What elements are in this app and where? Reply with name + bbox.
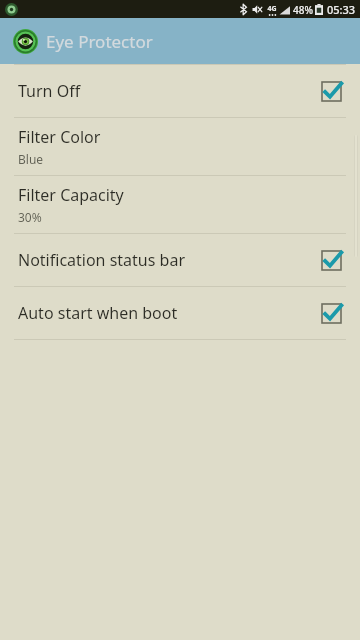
staticText: Blue xyxy=(18,151,44,167)
staticText: 48% xyxy=(293,3,313,17)
staticText: Notification status bar xyxy=(18,249,185,271)
staticText: Filter Capacity xyxy=(18,184,124,206)
button[interactable]: Filter Capacity xyxy=(0,176,360,233)
button[interactable]: Filter Color xyxy=(0,118,360,175)
staticText: Turn Off xyxy=(18,80,81,102)
button[interactable]: Toggle setting xyxy=(316,245,346,275)
button[interactable]: Notification status bar xyxy=(0,234,360,286)
button[interactable]: Auto start when boot xyxy=(0,287,360,339)
button[interactable]: Toggle setting xyxy=(316,298,346,328)
staticText: Auto start when boot xyxy=(18,302,178,324)
button[interactable]: Toggle setting xyxy=(316,76,346,106)
staticText: 05:33 xyxy=(327,2,356,17)
staticText: Eye Protector xyxy=(46,30,153,53)
staticText: 30% xyxy=(18,209,42,225)
staticText: Filter Color xyxy=(18,126,101,148)
button[interactable]: Turn Off xyxy=(0,65,360,117)
staticText: 4G xyxy=(267,4,277,14)
